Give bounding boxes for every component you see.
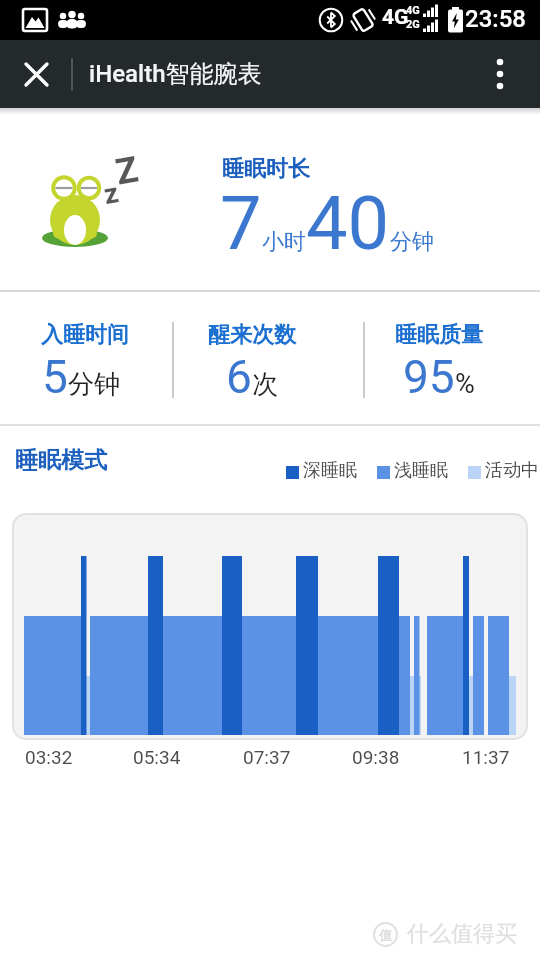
staticText: 浅睡眠	[394, 459, 448, 482]
staticText: 分钟	[68, 368, 120, 401]
staticText: 11:37	[462, 746, 510, 768]
staticText: 活动中	[485, 459, 539, 482]
staticText: 4G	[406, 4, 420, 17]
staticText: 2G	[406, 18, 420, 31]
staticText: 40	[306, 180, 390, 267]
button[interactable]	[478, 52, 522, 96]
staticText: 05:34	[133, 746, 181, 768]
staticText: 小时	[262, 228, 306, 256]
staticText: 深睡眠	[303, 459, 357, 482]
staticText: 4G	[382, 5, 409, 30]
staticText: %	[455, 368, 475, 400]
staticText: 醒来次数	[208, 321, 296, 349]
staticText: 值	[379, 927, 392, 943]
staticText: iHealth智能腕表	[89, 59, 262, 89]
staticText: z	[101, 176, 122, 211]
staticText: 03:32	[25, 746, 73, 768]
staticText: 95	[403, 350, 455, 404]
staticText: 09:38	[352, 746, 400, 768]
staticText: 入睡时间	[41, 321, 129, 349]
staticText: 次	[252, 368, 278, 401]
staticText: 7	[220, 180, 262, 267]
staticText: 5	[42, 350, 68, 404]
staticText: 6	[226, 350, 252, 404]
staticText: 23:58	[465, 5, 526, 33]
staticText: 什么值得买	[407, 920, 517, 948]
button[interactable]	[14, 52, 58, 96]
staticText: 07:37	[243, 746, 291, 768]
staticText: 分钟	[390, 228, 434, 256]
staticText: Z	[112, 148, 141, 194]
staticText: 睡眠时长	[222, 155, 310, 183]
staticText: 睡眠质量	[395, 321, 483, 349]
staticText: 睡眠模式	[15, 446, 107, 475]
